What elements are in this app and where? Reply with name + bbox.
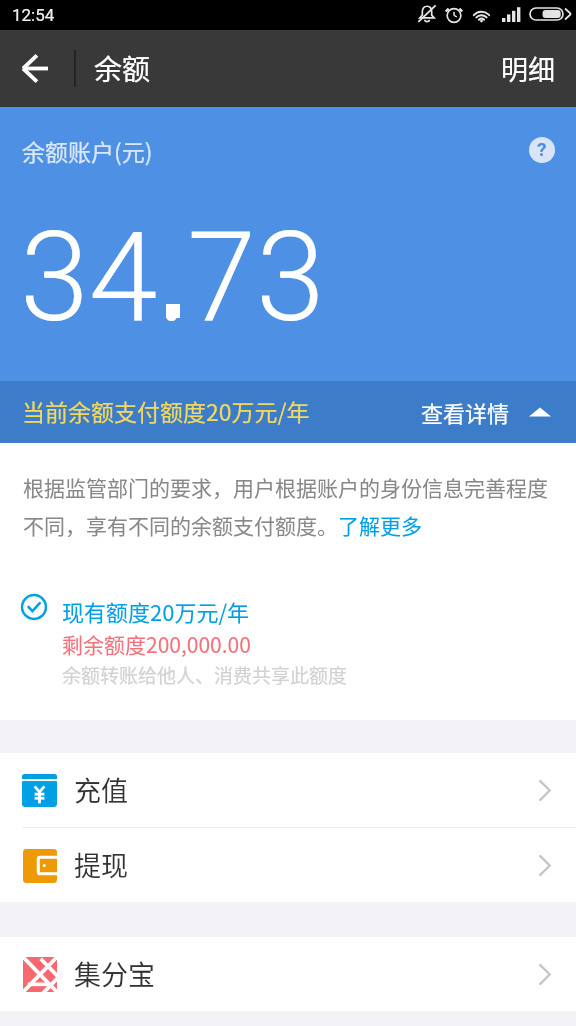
- staticText: 充值: [74, 770, 128, 809]
- staticText: ?: [537, 138, 547, 160]
- button[interactable]: 集分宝: [0, 937, 576, 1011]
- button[interactable]: 提现: [0, 828, 576, 902]
- staticText: 余额转账给他人、消费共享此额度: [62, 661, 348, 689]
- staticText: 查看详情: [421, 396, 510, 428]
- staticText: 根据监管部门的要求，用户根据账户的身份信息完善程度不同，享有不同的余额支付额度。…: [23, 472, 552, 540]
- staticText: 余额: [94, 48, 151, 89]
- staticText: 现有额度20万元/年: [62, 595, 250, 627]
- button[interactable]: Help: [529, 137, 555, 163]
- staticText: 当前余额支付额度20万元/年: [22, 394, 310, 427]
- button[interactable]: 当前余额支付额度20万元/年: [0, 381, 576, 443]
- button[interactable]: Back: [0, 30, 70, 107]
- staticText: 余额账户(元): [22, 134, 153, 167]
- staticText: 明细: [501, 49, 555, 88]
- staticText: 34.73: [20, 205, 325, 350]
- staticText: 剩余额度200,000.00: [62, 629, 251, 659]
- button[interactable]: 明细: [481, 30, 576, 107]
- staticText: 集分宝: [74, 954, 155, 993]
- staticText: 提现: [74, 845, 128, 884]
- staticText: 12:54: [12, 5, 55, 25]
- button[interactable]: 充值: [0, 753, 576, 827]
